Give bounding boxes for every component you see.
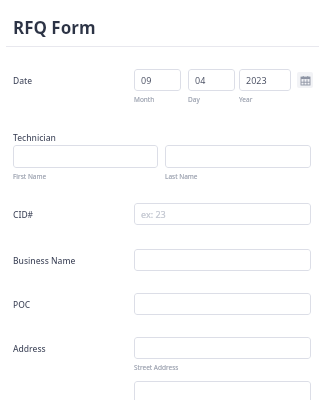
staticText: RFQ Form bbox=[13, 16, 96, 39]
button[interactable] bbox=[165, 145, 311, 168]
staticText: ex: 23 bbox=[141, 208, 166, 220]
button[interactable] bbox=[134, 381, 311, 400]
staticText: 2023 bbox=[246, 74, 267, 86]
button[interactable]: 09 bbox=[134, 69, 181, 91]
staticText: Last Name bbox=[165, 172, 311, 181]
staticText: Address bbox=[13, 343, 46, 355]
button[interactable]: ex: 23 bbox=[134, 203, 311, 225]
staticText: Technician bbox=[13, 132, 56, 144]
staticText: Business Name bbox=[13, 255, 76, 267]
staticText: 04 bbox=[195, 74, 206, 86]
staticText: Month bbox=[134, 95, 181, 104]
button[interactable] bbox=[134, 249, 311, 271]
staticText: 09 bbox=[141, 74, 152, 86]
staticText: POC bbox=[13, 299, 31, 311]
staticText: Street Address bbox=[134, 363, 311, 372]
staticText: Day bbox=[188, 95, 235, 104]
button[interactable] bbox=[134, 293, 311, 315]
staticText: First Name bbox=[13, 172, 158, 181]
button[interactable]: 2023 bbox=[239, 69, 291, 91]
staticText: Year bbox=[239, 95, 291, 104]
button[interactable]: 04 bbox=[188, 69, 235, 91]
button[interactable] bbox=[13, 145, 158, 168]
staticText: CID# bbox=[13, 209, 34, 221]
staticText: Date bbox=[13, 75, 33, 87]
button[interactable] bbox=[134, 337, 311, 359]
button[interactable]: Open calendar picker bbox=[297, 72, 313, 88]
